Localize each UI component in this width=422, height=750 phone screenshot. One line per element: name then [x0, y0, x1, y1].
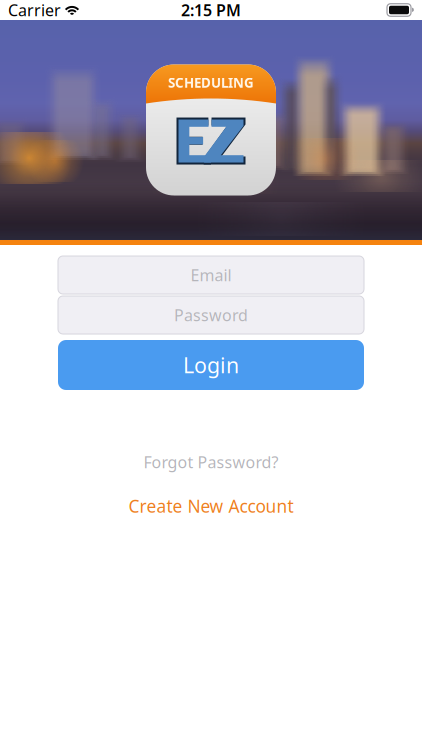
button[interactable]: Forgot Password? [58, 444, 364, 480]
staticText: Email [190, 264, 231, 286]
staticText: Login [183, 351, 239, 379]
staticText: Carrier [8, 0, 61, 21]
staticText: Password [174, 304, 248, 326]
staticText: SCHEDULING [168, 73, 254, 92]
staticText: Forgot Password? [143, 451, 278, 473]
button[interactable]: Email [58, 256, 364, 294]
button[interactable]: Login [58, 340, 364, 390]
button[interactable]: Create New Account [58, 488, 364, 524]
staticText: Create New Account [128, 494, 293, 517]
button[interactable]: Password [58, 296, 364, 334]
staticText: 2:15 PM [181, 0, 241, 21]
